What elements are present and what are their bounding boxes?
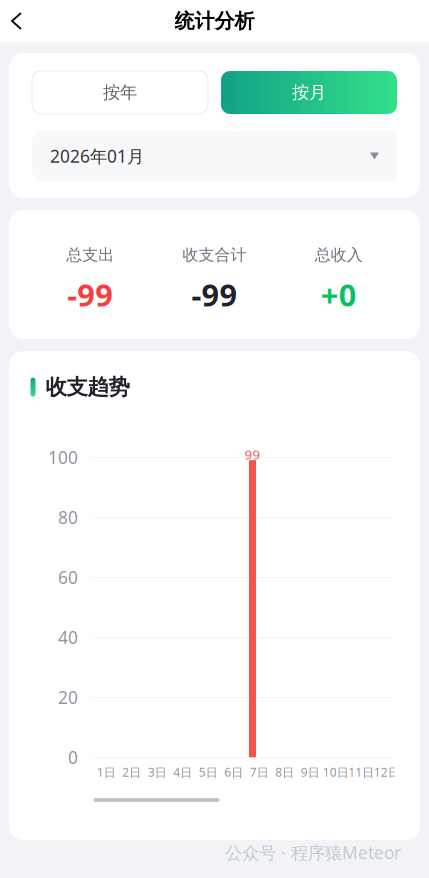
staticText: 统计分析	[174, 9, 254, 33]
staticText: 13日	[399, 764, 425, 780]
staticText: 5日	[199, 764, 218, 780]
staticText: -99	[191, 274, 237, 315]
staticText: 40	[58, 626, 78, 649]
staticText: 7日	[250, 764, 269, 780]
staticText: 9日	[301, 764, 320, 780]
staticText: 20	[58, 686, 78, 709]
staticText: 按年	[103, 82, 137, 103]
button[interactable]: 按年	[32, 71, 208, 114]
staticText: 60	[58, 566, 78, 589]
staticText: 80	[58, 506, 78, 529]
staticText: 总支出	[66, 245, 114, 265]
staticText: 100	[48, 446, 78, 469]
staticText: +0	[321, 274, 357, 315]
button[interactable]: 按月	[221, 71, 397, 114]
staticText: 1日	[97, 764, 116, 780]
button[interactable]: 返回	[0, 0, 33, 42]
staticText: 2日	[122, 764, 141, 780]
staticText: -99	[67, 274, 113, 315]
staticText: 收支合计	[182, 245, 246, 265]
staticText: 6日	[224, 764, 243, 780]
staticText: 总收入	[315, 245, 363, 265]
staticText: 10日	[323, 764, 349, 780]
staticText: 0	[68, 746, 78, 769]
staticText: 4日	[173, 764, 192, 780]
staticText: 99	[244, 445, 260, 463]
staticText: 2026年01月	[50, 144, 144, 167]
staticText: 11日	[348, 764, 374, 780]
staticText: 公众号 · 程序猿Meteor	[225, 841, 401, 864]
button[interactable]: 2026年01月	[32, 131, 397, 181]
staticText: 8日	[275, 764, 294, 780]
staticText: 按月	[292, 82, 326, 103]
staticText: 12日	[374, 764, 400, 780]
staticText: 3日	[148, 764, 167, 780]
staticText: 收支趋势	[45, 374, 129, 400]
